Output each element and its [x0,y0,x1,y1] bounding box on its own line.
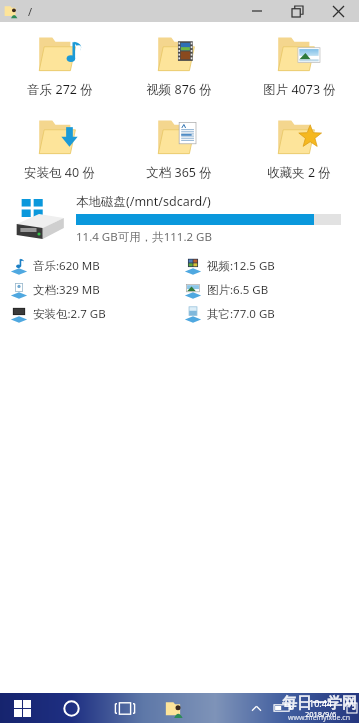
staticText: 每日一学网 [282,694,357,713]
staticText: 11.4 GB可用，共111.2 GB [76,229,212,245]
staticText: 视频:12.5 GB [207,258,275,274]
staticText: 视频 876 份 [146,81,212,98]
button[interactable]: Show hidden icons [243,693,269,723]
button[interactable]: File Explorer [152,693,198,723]
button[interactable]: 音乐 272 份 [0,32,119,98]
staticText: 安装包:2.7 GB [33,306,106,322]
staticText: www.meiriyixue.cn [288,713,351,723]
button[interactable]: 图片 4073 份 [239,32,359,98]
button[interactable]: 视频 876 份 [119,32,239,98]
button[interactable]: 音乐:620 MB [10,257,184,275]
staticText: 本地磁盘(/mnt/sdcard/) [76,193,211,210]
button[interactable]: Battery [269,693,297,723]
staticText: 图片 4073 份 [263,81,336,98]
button[interactable]: 其它:77.0 GB [184,305,359,323]
button[interactable]: 安装包 40 份 [0,115,119,181]
button[interactable]: 文档:329 MB [10,281,184,299]
staticText: 文档 365 份 [146,164,212,181]
button[interactable]: 本地磁盘(/mnt/sdcard/) [8,193,341,245]
button[interactable]: 图片:6.5 GB [184,281,359,299]
staticText: 图片:6.5 GB [207,282,269,298]
button[interactable]: Cortana search [44,693,98,723]
button[interactable]: Minimize [237,0,277,22]
staticText: 其它:77.0 GB [207,306,275,322]
staticText: 安装包 40 份 [24,164,95,181]
staticText: 10:44 [309,697,333,709]
button[interactable]: 10:44 [297,693,345,723]
button[interactable]: 收藏夹 2 份 [239,115,359,181]
button[interactable]: 文档 365 份 [119,115,239,181]
button[interactable]: 安装包:2.7 GB [10,305,184,323]
button[interactable]: Action center [345,693,359,723]
button[interactable]: Start [0,693,44,723]
staticText: / [28,4,33,19]
staticText: 2018/9/6 [305,709,337,719]
button[interactable]: Restore [277,0,317,22]
staticText: 音乐 272 份 [27,81,93,98]
button[interactable]: Close [317,0,359,22]
staticText: 音乐:620 MB [33,258,100,274]
staticText: 文档:329 MB [33,282,100,298]
staticText: 收藏夹 2 份 [267,164,331,181]
button[interactable]: Task view [98,693,152,723]
button[interactable]: 视频:12.5 GB [184,257,359,275]
